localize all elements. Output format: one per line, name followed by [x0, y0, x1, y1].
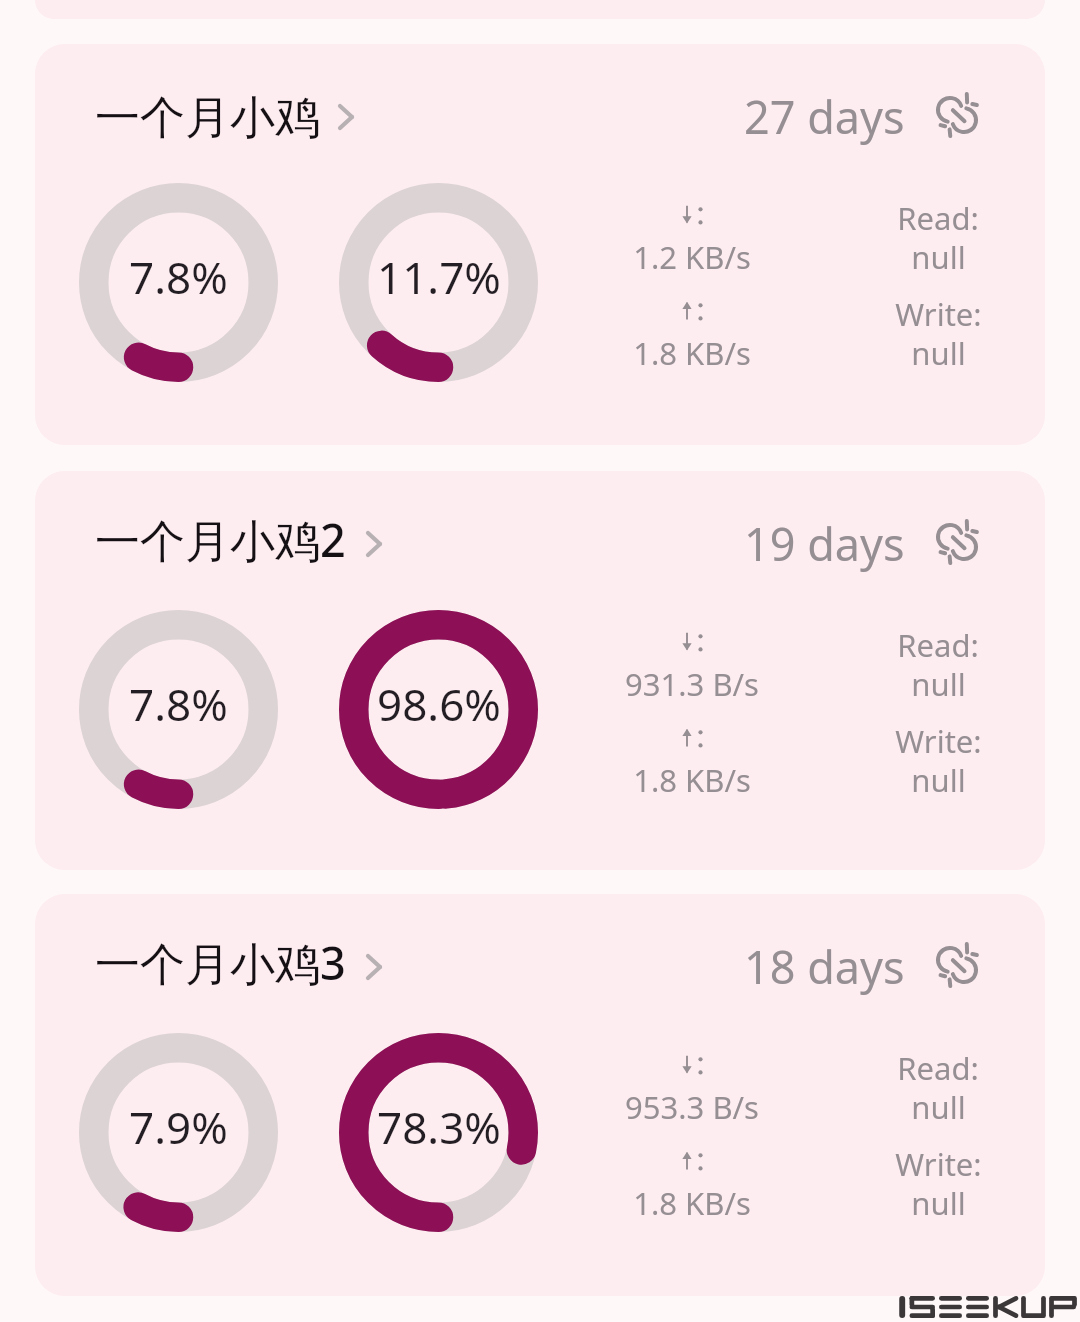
- staticText: null: [911, 332, 966, 374]
- staticText: 7.9%: [129, 1097, 228, 1157]
- staticText: null: [911, 759, 966, 801]
- staticText: Read:: [897, 197, 979, 239]
- staticText: 18 days: [744, 936, 905, 997]
- other: Link off: [933, 91, 981, 139]
- staticText: null: [911, 663, 966, 705]
- staticText: Write:: [895, 1143, 982, 1185]
- button[interactable]: Disconnect: [925, 510, 989, 574]
- staticText: 78.3%: [377, 1097, 501, 1157]
- staticText: 一个月小鸡3: [95, 932, 346, 993]
- staticText: 7.8%: [129, 247, 228, 307]
- other: Link off: [933, 518, 981, 566]
- staticText: 一个月小鸡: [95, 90, 320, 147]
- button[interactable]: 一个月小鸡2: [89, 507, 385, 569]
- staticText: 1.8 KB/s: [633, 332, 751, 374]
- staticText: 27 days: [744, 86, 905, 147]
- button[interactable]: Disconnect: [925, 83, 989, 147]
- other: Link off: [933, 941, 981, 989]
- staticText: 1.2 KB/s: [633, 236, 751, 278]
- staticText: null: [911, 1182, 966, 1224]
- staticText: 一个月小鸡2: [95, 509, 346, 570]
- staticText: 11.7%: [377, 247, 501, 307]
- staticText: 7.8%: [129, 674, 228, 734]
- button[interactable]: 一个月小鸡: [35, 44, 1045, 445]
- button[interactable]: Disconnect: [925, 933, 989, 997]
- staticText: 19 days: [744, 513, 905, 574]
- staticText: Write:: [895, 293, 982, 335]
- staticText: 953.3 B/s: [625, 1086, 759, 1128]
- staticText: 1.8 KB/s: [633, 759, 751, 801]
- button[interactable]: 一个月小鸡2: [35, 471, 1045, 870]
- staticText: 98.6%: [377, 674, 501, 734]
- staticText: 931.3 B/s: [625, 663, 759, 705]
- staticText: null: [911, 236, 966, 278]
- button[interactable]: 一个月小鸡: [89, 80, 357, 142]
- staticText: Read:: [897, 1047, 979, 1089]
- button[interactable]: 一个月小鸡3: [35, 894, 1045, 1296]
- staticText: null: [911, 1086, 966, 1128]
- staticText: Write:: [895, 720, 982, 762]
- staticText: 1.8 KB/s: [633, 1182, 751, 1224]
- staticText: Read:: [897, 624, 979, 666]
- button[interactable]: 一个月小鸡3: [89, 930, 385, 992]
